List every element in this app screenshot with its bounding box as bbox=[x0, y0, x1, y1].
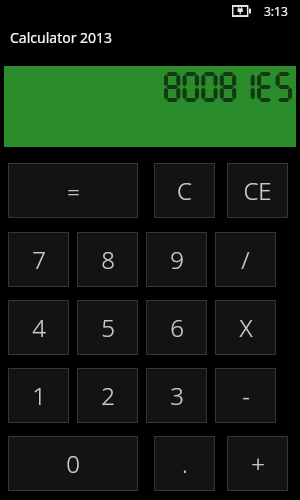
staticText: 3 bbox=[170, 379, 184, 412]
button[interactable]: + bbox=[227, 436, 288, 491]
button[interactable]: 5 bbox=[77, 300, 138, 355]
button[interactable]: CE bbox=[227, 163, 288, 218]
staticText: 9 bbox=[170, 243, 184, 276]
button[interactable]: - bbox=[215, 368, 276, 423]
staticText: X bbox=[239, 311, 253, 344]
button[interactable]: / bbox=[215, 232, 276, 287]
staticText: 8 bbox=[101, 243, 115, 276]
staticText: . bbox=[182, 447, 188, 480]
button[interactable]: 7 bbox=[8, 232, 69, 287]
staticText: 0 bbox=[66, 447, 80, 480]
staticText: = bbox=[67, 176, 80, 206]
button[interactable]: . bbox=[154, 436, 215, 491]
staticText: 5 bbox=[101, 311, 115, 344]
staticText: 3:13 bbox=[264, 3, 288, 19]
button[interactable]: 0 bbox=[8, 436, 138, 491]
button[interactable]: 3 bbox=[146, 368, 207, 423]
button[interactable]: C bbox=[154, 163, 215, 218]
button[interactable]: 1 bbox=[8, 368, 69, 423]
staticText: Calculator 2013 bbox=[10, 28, 113, 47]
button[interactable]: 4 bbox=[8, 300, 69, 355]
staticText: + bbox=[251, 447, 265, 480]
staticText: C bbox=[177, 174, 192, 207]
staticText: / bbox=[241, 243, 250, 276]
staticText: 4 bbox=[32, 311, 46, 344]
staticText: 1 bbox=[32, 379, 46, 412]
button[interactable]: 9 bbox=[146, 232, 207, 287]
button[interactable]: 2 bbox=[77, 368, 138, 423]
staticText: CE bbox=[243, 174, 272, 207]
staticText: - bbox=[242, 379, 250, 412]
button[interactable]: 8 bbox=[77, 232, 138, 287]
staticText: 6 bbox=[170, 311, 184, 344]
button[interactable]: = bbox=[8, 163, 138, 218]
staticText: 2 bbox=[101, 379, 115, 412]
button[interactable]: X bbox=[215, 300, 276, 355]
staticText: 7 bbox=[32, 243, 46, 276]
button[interactable]: 6 bbox=[146, 300, 207, 355]
